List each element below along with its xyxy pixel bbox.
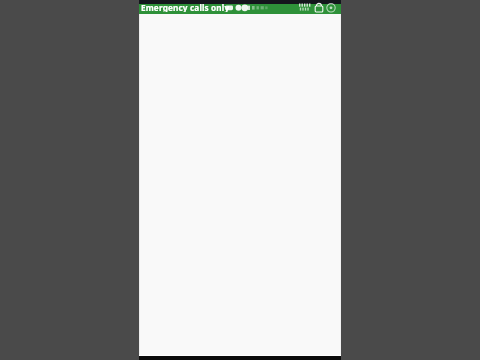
other: Clock and mobile data <box>298 3 314 13</box>
button[interactable]: Notifications <box>224 4 272 14</box>
staticText: Emergency calls only <box>141 2 230 12</box>
other: Battery <box>325 3 337 13</box>
other: Screen lock <box>313 3 325 13</box>
